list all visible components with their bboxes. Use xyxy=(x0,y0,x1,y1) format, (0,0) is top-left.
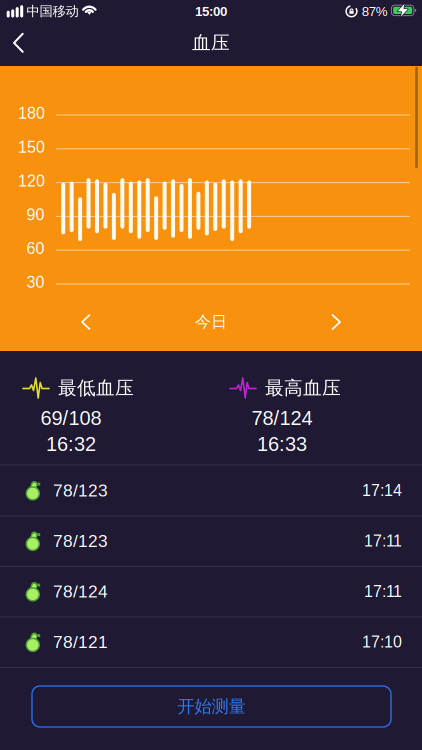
button[interactable]: 78/123 xyxy=(0,465,422,515)
staticText: 60 xyxy=(26,240,44,257)
staticText: 150 xyxy=(18,138,45,156)
staticText: 17:10 xyxy=(362,633,402,651)
staticText: 78/123 xyxy=(53,532,108,550)
button[interactable]: Previous day xyxy=(79,313,93,331)
staticText: 15:00 xyxy=(195,4,227,18)
button[interactable]: 78/123 xyxy=(0,516,422,566)
staticText: 87% xyxy=(362,4,388,18)
staticText: 17:11 xyxy=(364,583,402,600)
staticText: 17:14 xyxy=(362,482,402,499)
staticText: 16:33 xyxy=(257,433,307,455)
staticText: 180 xyxy=(18,105,45,122)
staticText: 16:32 xyxy=(46,433,96,455)
staticText: 中国移动 xyxy=(26,3,78,19)
staticText: 90 xyxy=(26,206,44,223)
staticText: 最低血压 xyxy=(58,376,134,399)
staticText: 30 xyxy=(26,274,44,291)
staticText: 血压 xyxy=(192,31,230,54)
button[interactable]: Next day xyxy=(329,313,343,331)
staticText: 120 xyxy=(18,172,45,190)
staticText: 78/124 xyxy=(53,582,108,601)
button[interactable]: Back xyxy=(9,32,35,54)
staticText: 78/121 xyxy=(53,633,108,651)
staticText: 开始测量 xyxy=(177,696,245,717)
button[interactable]: 78/124 xyxy=(0,566,422,616)
staticText: 78/123 xyxy=(53,481,108,500)
button[interactable]: 开始测量 xyxy=(32,686,391,727)
staticText: 17:11 xyxy=(364,532,402,550)
staticText: 78/124 xyxy=(251,407,312,429)
staticText: 最高血压 xyxy=(265,376,341,399)
button[interactable]: 78/121 xyxy=(0,617,422,667)
staticText: 69/108 xyxy=(40,407,101,429)
staticText: 今日 xyxy=(195,312,227,332)
